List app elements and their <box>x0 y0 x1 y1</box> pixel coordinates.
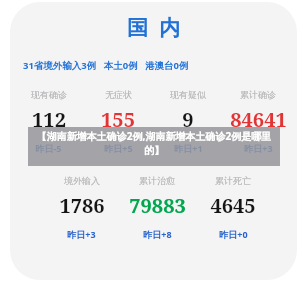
button[interactable]: 新闻标题 <box>28 127 280 166</box>
button[interactable]: 累计确诊 <box>223 89 293 154</box>
staticText: 累计确诊 <box>240 89 276 100</box>
staticText: 无症状 <box>105 89 132 100</box>
button[interactable]: 现有疑似 <box>153 89 223 154</box>
staticText: 昨日+8 <box>143 228 172 240</box>
staticText: 1786 <box>59 192 105 219</box>
staticText: 9 <box>182 106 194 133</box>
staticText: 昨日+1 <box>174 142 203 154</box>
button[interactable]: 无症状 <box>83 89 153 154</box>
staticText: 昨日+5 <box>104 142 133 154</box>
staticText: 昨日+3 <box>67 228 96 240</box>
staticText: 【湖南新增本土确诊2例,湖南新增本土确诊2例是哪里的】 <box>32 129 276 157</box>
staticText: 国 内 <box>127 13 180 42</box>
staticText: 累计治愈 <box>139 175 175 186</box>
staticText: 79883 <box>129 192 186 219</box>
staticText: 155 <box>101 106 135 133</box>
staticText: 现有确诊 <box>31 89 67 100</box>
staticText: 昨日+0 <box>219 228 248 240</box>
staticText: 昨日+3 <box>244 142 273 154</box>
staticText: 境外输入 <box>64 175 100 186</box>
staticText: 昨日-5 <box>35 142 62 154</box>
staticText: 4645 <box>210 192 256 219</box>
button[interactable]: 累计治愈 <box>119 175 195 240</box>
staticText: 112 <box>32 106 66 133</box>
button[interactable]: 境外输入 <box>44 175 119 240</box>
button[interactable]: 现有确诊 <box>14 89 83 154</box>
button[interactable]: 累计死亡 <box>195 175 271 240</box>
staticText: 84641 <box>230 106 287 133</box>
staticText: 累计死亡 <box>215 175 251 186</box>
staticText: 现有疑似 <box>170 89 206 100</box>
button[interactable]: 31省境外输入3例 本土0例 港澳台0例 <box>23 59 189 72</box>
